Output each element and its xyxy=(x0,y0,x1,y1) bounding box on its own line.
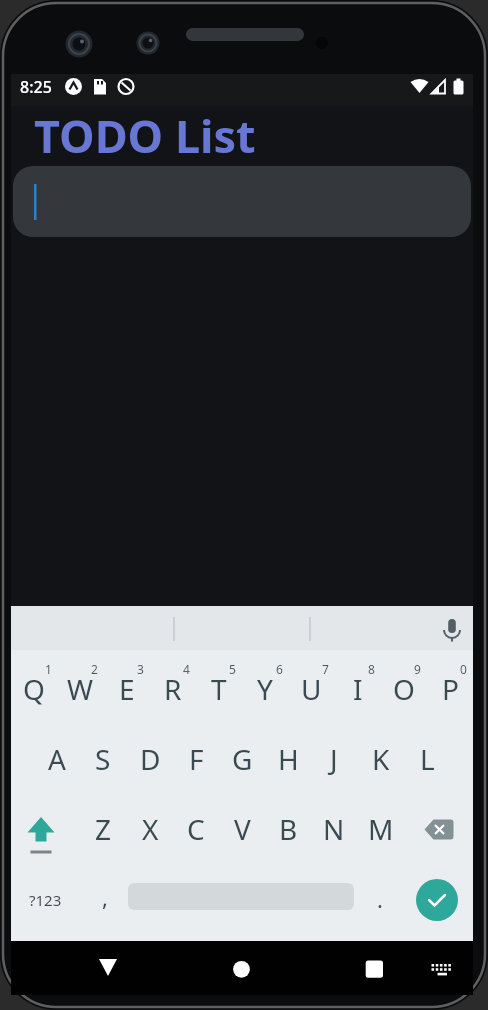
staticText: 7 xyxy=(322,661,329,677)
button[interactable]: Q xyxy=(23,670,45,708)
button[interactable]: O xyxy=(393,670,415,708)
staticText: 4 xyxy=(183,661,190,677)
button[interactable]: R xyxy=(164,670,182,708)
staticText: 6 xyxy=(276,661,283,677)
button[interactable]: B xyxy=(279,810,298,848)
button[interactable] xyxy=(416,879,458,921)
button[interactable]: U xyxy=(301,670,322,708)
staticText: 3 xyxy=(137,661,144,677)
button[interactable]: N xyxy=(323,810,345,848)
staticText: TODO List xyxy=(34,105,256,166)
button[interactable] xyxy=(13,166,471,237)
button[interactable]: F xyxy=(189,740,204,778)
button[interactable] xyxy=(217,947,265,987)
button[interactable] xyxy=(424,952,460,984)
button[interactable]: T xyxy=(211,670,227,708)
staticText: 8 xyxy=(368,661,375,677)
staticText: 0 xyxy=(460,661,467,677)
button[interactable] xyxy=(84,947,132,987)
button[interactable]: Y xyxy=(257,670,273,708)
button[interactable]: , xyxy=(102,882,108,912)
button[interactable]: X xyxy=(142,810,159,848)
button[interactable] xyxy=(350,947,398,987)
button[interactable]: S xyxy=(95,740,111,778)
button[interactable]: E xyxy=(119,670,135,708)
staticText: 2 xyxy=(91,661,98,677)
button[interactable]: V xyxy=(234,810,251,848)
button[interactable]: . xyxy=(377,884,383,914)
button[interactable]: A xyxy=(48,740,66,778)
staticText: 5 xyxy=(229,661,236,677)
staticText: 9 xyxy=(414,661,421,677)
button[interactable]: G xyxy=(232,740,253,778)
button[interactable]: C xyxy=(187,810,205,848)
button[interactable]: P xyxy=(442,670,459,708)
staticText: 8:25 xyxy=(20,76,52,98)
button[interactable]: J xyxy=(330,740,338,778)
button[interactable]: L xyxy=(420,740,435,778)
button[interactable]: D xyxy=(140,740,161,778)
button[interactable]: I xyxy=(353,670,363,708)
button[interactable] xyxy=(21,810,61,850)
button[interactable]: Z xyxy=(95,810,112,848)
staticText: 1 xyxy=(45,661,52,677)
button[interactable]: K xyxy=(372,740,390,778)
button[interactable]: ?123 xyxy=(29,890,62,910)
button[interactable]: H xyxy=(278,740,299,778)
button[interactable]: M xyxy=(368,810,394,848)
button[interactable] xyxy=(415,812,459,848)
button[interactable]: W xyxy=(67,670,94,708)
